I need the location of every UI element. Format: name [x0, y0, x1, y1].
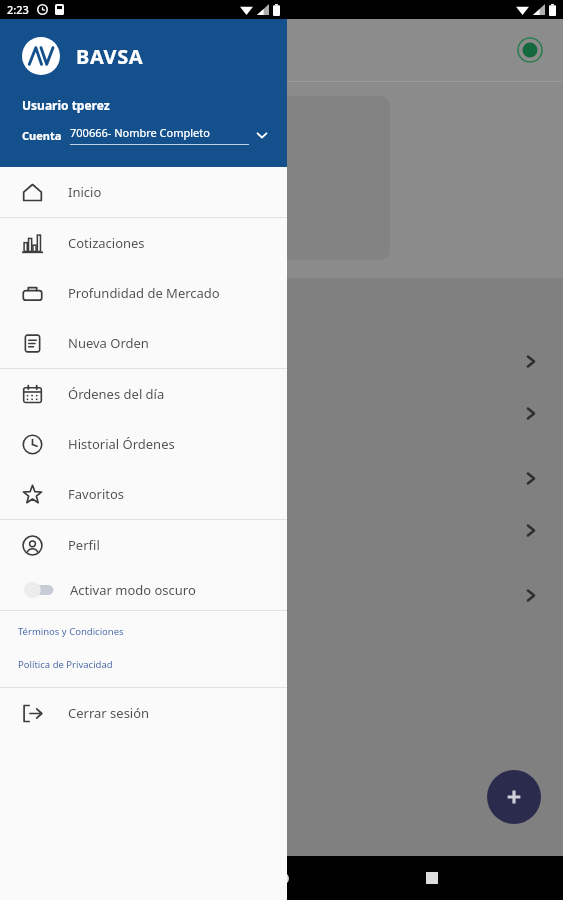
- button[interactable]: Términos y Condiciones: [0, 623, 287, 640]
- staticText: Profundidad de Mercado: [68, 284, 220, 302]
- button[interactable]: [0, 505, 563, 556]
- staticText: Historial Órdenes: [68, 435, 175, 453]
- button[interactable]: Inicio: [262, 858, 302, 898]
- button[interactable]: Activar modo oscuro: [0, 570, 287, 610]
- staticText: Política de Privacidad: [18, 658, 113, 671]
- button[interactable]: [210, 96, 390, 260]
- button[interactable]: [10, 96, 190, 260]
- button[interactable]: Agregar: [487, 770, 541, 824]
- staticText: Cerrar sesión: [68, 704, 150, 722]
- staticText: Favoritos: [68, 485, 125, 503]
- staticText: Cotizaciones: [68, 234, 145, 252]
- button[interactable]: Favoritos: [0, 469, 287, 519]
- staticText: Perfil: [68, 536, 100, 554]
- staticText: Términos y Condiciones: [18, 625, 124, 638]
- staticText: 700666- Nombre Completo: [70, 125, 210, 140]
- button[interactable]: Órdenes del día: [0, 369, 287, 419]
- staticText: 2:23: [7, 2, 29, 17]
- button[interactable]: Política de Privacidad: [0, 656, 287, 673]
- button[interactable]: [0, 453, 563, 504]
- button[interactable]: [0, 388, 563, 439]
- button[interactable]: Perfil: [0, 520, 287, 570]
- button[interactable]: Cerrar sesión: [0, 688, 287, 738]
- button[interactable]: Cotizaciones: [0, 218, 287, 268]
- staticText: Activar modo oscuro: [70, 581, 196, 599]
- staticText: Usuario tperez: [22, 97, 110, 113]
- button[interactable]: Estado de conexión: [515, 35, 545, 65]
- button[interactable]: Historial Órdenes: [0, 419, 287, 469]
- button[interactable]: Recientes: [412, 858, 452, 898]
- button[interactable]: Profundidad de Mercado: [0, 268, 287, 318]
- staticText: BAVSA: [76, 43, 144, 70]
- staticText: Nueva Orden: [68, 334, 149, 352]
- staticText: Órdenes del día: [68, 385, 165, 403]
- staticText: 2:23: [7, 2, 29, 17]
- staticText: Cuenta: [22, 128, 62, 143]
- button[interactable]: Nueva Orden: [0, 318, 287, 368]
- button[interactable]: Inicio: [0, 167, 287, 217]
- staticText: Inicio: [68, 183, 102, 201]
- button[interactable]: [0, 336, 563, 387]
- button[interactable]: [0, 570, 563, 621]
- button[interactable]: 700666- Nombre Completo: [70, 125, 269, 145]
